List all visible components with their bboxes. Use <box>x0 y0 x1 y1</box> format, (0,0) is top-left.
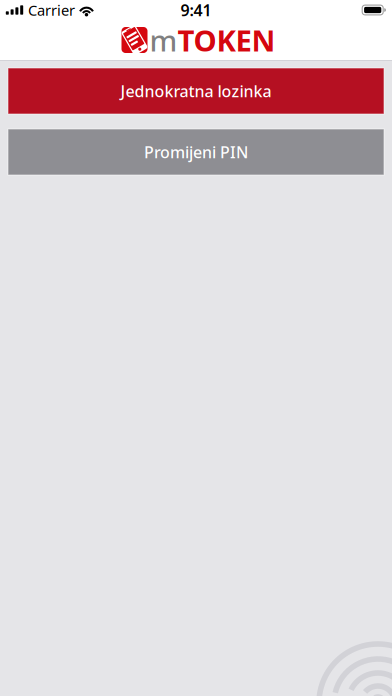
staticText: Jednokratna lozinka <box>120 80 271 102</box>
staticText: m <box>149 20 177 59</box>
staticText: Carrier <box>28 0 75 20</box>
staticText: TOKEN <box>177 20 275 59</box>
staticText: 9:41 <box>180 0 211 21</box>
button[interactable]: Promijeni PIN <box>8 129 384 175</box>
button[interactable]: Jednokratna lozinka <box>8 68 384 114</box>
staticText: Promijeni PIN <box>144 141 248 163</box>
